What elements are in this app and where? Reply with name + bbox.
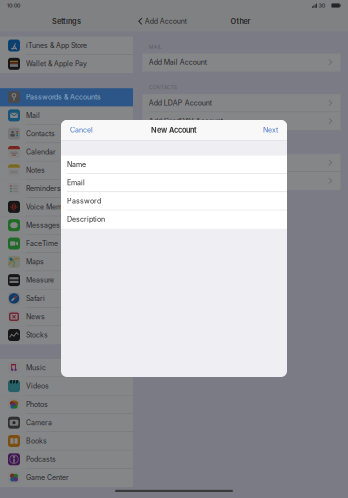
staticText: 3G [318, 2, 325, 9]
staticText: Calendar [26, 148, 56, 156]
button[interactable]: Game Center [0, 469, 133, 487]
staticText: Contacts [26, 129, 55, 138]
button[interactable]: FaceTime [0, 235, 133, 253]
staticText: Measure [26, 276, 54, 284]
staticText: Messages [26, 221, 60, 229]
staticText: Reminders [26, 184, 61, 193]
staticText: Name [67, 160, 86, 169]
button[interactable]: Wallet & Apple Pay [0, 55, 133, 73]
button[interactable]: iTunes & App Store [0, 37, 133, 55]
staticText: Music [26, 364, 46, 372]
button[interactable]: Add CardDAV Account [142, 112, 340, 130]
staticText: Settings [52, 17, 81, 26]
staticText: Description [67, 215, 105, 223]
button[interactable]: Voice Memos [0, 198, 133, 216]
staticText: Add Account [145, 17, 187, 25]
button[interactable]: Camera [0, 414, 133, 432]
staticText: Other [230, 17, 250, 26]
staticText: MAIL [149, 44, 162, 50]
staticText: Email [67, 178, 85, 187]
staticText: Voice Memos [26, 203, 70, 211]
staticText: Game Center [26, 473, 69, 482]
button[interactable]: Password [61, 192, 287, 210]
staticText: Password [67, 197, 101, 205]
staticText: Wallet & Apple Pay [26, 60, 87, 68]
button[interactable]: Notes [0, 161, 133, 180]
button[interactable]: Email [61, 174, 287, 192]
button[interactable]: Maps [0, 253, 133, 271]
button[interactable]: Contacts [0, 125, 133, 143]
button[interactable]: Add CalDAV Account [142, 154, 340, 172]
button[interactable]: Name [61, 155, 287, 174]
staticText: Passwords & Accounts [26, 93, 101, 101]
button[interactable]: Photos [0, 395, 133, 414]
button[interactable]: Music [0, 359, 133, 377]
button[interactable]: Add Subscribed Calendar [142, 172, 340, 190]
staticText: Cancel [70, 126, 93, 134]
button[interactable]: Safari [0, 289, 133, 308]
button[interactable]: Add Account [133, 12, 193, 30]
staticText: Maps [26, 258, 44, 266]
button[interactable]: Videos [0, 377, 133, 395]
staticText: Videos [26, 382, 49, 390]
button[interactable]: Description [61, 210, 287, 229]
staticText: Add CardDAV Account [149, 117, 223, 125]
staticText: Notes [26, 166, 45, 174]
button[interactable]: Add LDAP Account [142, 94, 340, 112]
staticText: News [26, 312, 45, 321]
staticText: Safari [26, 294, 45, 303]
button[interactable]: Next [255, 120, 287, 140]
staticText: Podcasts [26, 455, 56, 463]
staticText: CONTACTS [149, 84, 177, 91]
button[interactable]: Add Mail Account [142, 53, 340, 72]
button[interactable]: Reminders [0, 180, 133, 198]
staticText: Photos [26, 400, 48, 409]
staticText: Add LDAP Account [149, 99, 212, 107]
staticText: Books [26, 437, 47, 445]
button[interactable]: Books [0, 432, 133, 450]
button[interactable]: Passwords & Accounts [0, 88, 133, 106]
staticText: Stocks [26, 331, 48, 339]
button[interactable]: Podcasts [0, 450, 133, 469]
staticText: 10:00 [7, 2, 20, 9]
button[interactable]: Mail [0, 106, 133, 125]
button[interactable]: Calendar [0, 143, 133, 161]
button[interactable]: News [0, 308, 133, 326]
button[interactable]: Measure [0, 271, 133, 289]
button[interactable]: Cancel [61, 120, 101, 140]
staticText: Camera [26, 418, 52, 427]
staticText: Next [263, 126, 278, 134]
staticText: Mail [26, 111, 40, 120]
staticText: FaceTime [26, 239, 58, 248]
staticText: iTunes & App Store [26, 41, 87, 50]
button[interactable]: Messages [0, 216, 133, 235]
staticText: New Account [151, 126, 197, 134]
button[interactable]: Stocks [0, 326, 133, 344]
staticText: Add Mail Account [149, 58, 207, 66]
